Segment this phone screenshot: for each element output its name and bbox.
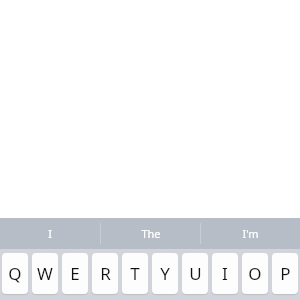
button[interactable]: E [62, 253, 88, 294]
button[interactable]: I'm [201, 218, 300, 249]
button[interactable]: W [32, 253, 58, 294]
staticText: R [100, 262, 111, 285]
staticText: P [280, 262, 291, 285]
staticText: I [222, 262, 228, 285]
button[interactable]: O [242, 253, 268, 294]
button[interactable]: U [182, 253, 208, 294]
staticText: The [141, 226, 161, 241]
button[interactable]: The [101, 218, 200, 249]
staticText: U [189, 262, 202, 285]
button[interactable]: R [92, 253, 118, 294]
button[interactable]: T [122, 253, 148, 294]
button[interactable]: Q [2, 253, 28, 294]
staticText: T [130, 262, 140, 285]
staticText: O [248, 262, 262, 285]
staticText: I [48, 226, 52, 241]
staticText: E [70, 262, 80, 285]
button[interactable]: I [212, 253, 238, 294]
button[interactable]: Y [152, 253, 178, 294]
staticText: Q [8, 262, 22, 285]
staticText: Y [160, 262, 170, 285]
staticText: W [37, 262, 53, 285]
button[interactable]: P [272, 253, 298, 294]
button[interactable]: I [0, 218, 100, 249]
staticText: I'm [242, 226, 259, 241]
